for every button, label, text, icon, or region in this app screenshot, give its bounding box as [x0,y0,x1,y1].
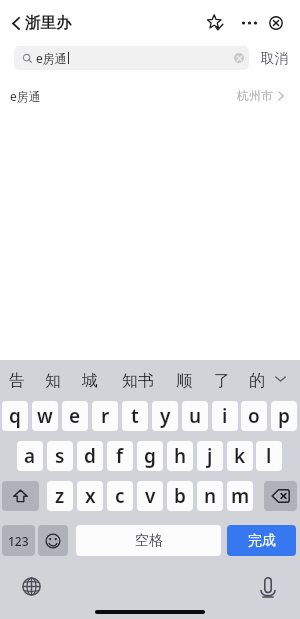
button[interactable]: 告 [4,365,30,397]
staticText: 123 [8,533,29,549]
button[interactable]: 城 [77,365,103,397]
staticText: w [37,403,53,429]
button[interactable]: f [107,441,133,471]
button[interactable]: y [152,401,178,431]
staticText: h [174,443,187,469]
staticText: p [278,403,290,429]
button[interactable]: Backspace [264,481,297,511]
staticText: a [24,443,36,469]
staticText: y [160,403,171,429]
button[interactable]: s [47,441,73,471]
staticText: 知 [45,371,61,391]
staticText: i [222,403,228,429]
button[interactable]: e房通 [14,46,249,70]
staticText: m [231,483,250,509]
button[interactable]: Switch keyboard [22,577,41,596]
button[interactable]: q [2,401,28,431]
button[interactable]: c [107,481,133,511]
staticText: c [115,483,125,509]
staticText: k [234,443,246,469]
staticText: 杭州市 [237,88,273,103]
button[interactable]: Favorite [202,10,228,36]
button[interactable]: Voice input [260,577,276,598]
button[interactable]: 取消 [255,46,293,70]
button[interactable]: w [32,401,58,431]
button[interactable]: 顺 [171,365,197,397]
button[interactable]: g [137,441,163,471]
button[interactable]: 的 [244,365,270,397]
button[interactable]: x [77,481,103,511]
staticText: 的 [249,371,265,391]
staticText: u [189,403,202,429]
button[interactable]: e [62,401,88,431]
button[interactable]: 了 [209,365,235,397]
button[interactable]: j [197,441,223,471]
staticText: j [207,443,213,469]
staticText: v [145,483,156,509]
staticText: s [55,443,65,469]
staticText: t [131,403,139,429]
button[interactable]: Emoji [38,525,68,556]
button[interactable]: r [92,401,118,431]
button[interactable]: h [167,441,193,471]
staticText: 浙里办 [25,13,72,33]
staticText: 取消 [261,50,288,67]
button[interactable]: v [137,481,163,511]
button[interactable]: z [47,481,73,511]
button[interactable]: 知书 [117,365,159,397]
button[interactable]: t [122,401,148,431]
button[interactable]: d [77,441,103,471]
staticText: 空格 [135,532,163,550]
button[interactable]: m [227,481,253,511]
staticText: g [144,443,156,469]
button[interactable]: 浙里办 [8,7,76,39]
staticText: e [69,403,81,429]
staticText: 完成 [248,532,276,550]
button[interactable]: 知 [40,365,66,397]
button[interactable]: a [17,441,43,471]
staticText: b [174,483,186,509]
button[interactable]: l [256,441,282,471]
staticText: n [204,483,217,509]
button[interactable]: e房通 [0,70,300,106]
button[interactable]: n [197,481,223,511]
button[interactable]: Clear text [234,53,244,63]
button[interactable]: 空格 [76,525,221,556]
staticText: f [116,443,124,469]
button[interactable]: 完成 [227,525,296,556]
staticText: e房通 [10,88,41,104]
staticText: 告 [9,371,25,391]
staticText: d [84,443,96,469]
staticText: r [101,403,110,429]
staticText: 知书 [122,371,154,391]
button[interactable]: More options [236,10,262,36]
staticText: z [55,483,65,509]
staticText: 顺 [176,371,192,391]
button[interactable]: 123 [2,525,35,556]
staticText: q [9,403,21,429]
staticText: l [266,443,272,469]
staticText: 城 [82,371,98,391]
button[interactable]: o [241,401,267,431]
button[interactable]: p [271,401,297,431]
button[interactable]: i [212,401,238,431]
staticText: x [85,483,96,509]
button[interactable]: k [227,441,253,471]
staticText: 了 [214,371,230,391]
button[interactable]: Close [263,10,289,36]
button[interactable]: b [167,481,193,511]
button[interactable]: More candidates [268,363,292,395]
button[interactable]: u [182,401,208,431]
staticText: o [248,403,260,429]
staticText: e房通 [36,50,67,66]
button[interactable]: Shift [2,481,39,511]
